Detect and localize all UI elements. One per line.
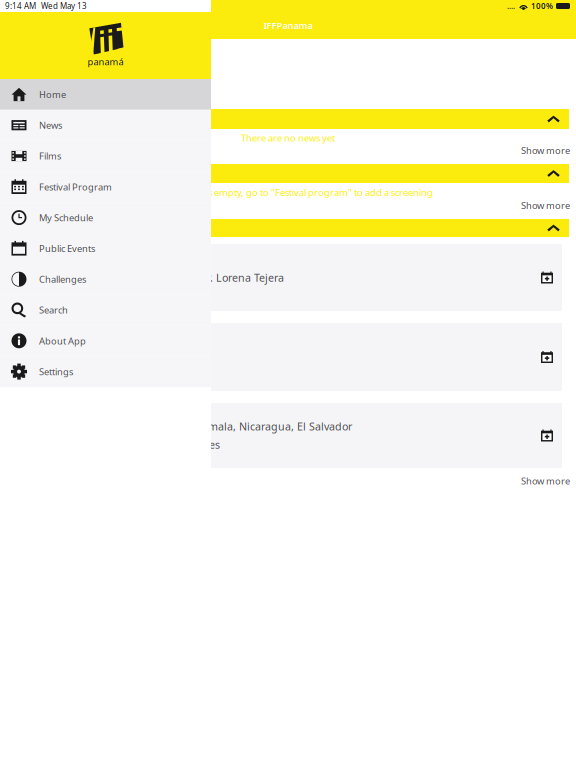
staticText: News [10,112,38,126]
staticText: .... [507,1,515,11]
staticText: Show more [521,144,570,157]
button[interactable]: My Schedule [0,202,211,233]
button[interactable]: Show more [0,202,576,219]
button[interactable]: Search [0,295,211,325]
button[interactable]: News [0,110,211,141]
button[interactable]: Challenges [0,264,211,295]
button[interactable]: My schedule [0,164,569,183]
button[interactable]: Home [0,79,211,110]
staticText: panamá [55,83,91,95]
staticText: Home [39,88,66,101]
staticText: My Schedule [39,211,93,224]
staticText: Dirección: Juan Carlos Borges [72,437,220,452]
button[interactable]: Show more [0,468,576,490]
staticText: Settings [39,365,73,378]
staticText: Panamá, 2024, 95 min | Dir. Lorena Tejer… [72,270,284,285]
staticText: Show more [521,475,570,487]
staticText: There are no news yet [241,132,335,144]
button[interactable]: Panamá, 2024, 95 min | Dir. Lorena Tejer… [0,244,562,311]
staticText: Search [39,304,68,316]
staticText: News [39,119,62,131]
staticText: 100% [531,1,553,11]
staticText: Films [39,150,61,162]
staticText: Panamá, Costa Rica, Guatemala, Nicaragua… [72,419,352,433]
staticText: IFFPanama [263,19,312,32]
button[interactable]: Panamá, Costa Rica, Guatemala, Nicaragua… [0,403,562,468]
button[interactable]: Festival Program [0,171,211,202]
button[interactable]: Settings [0,356,211,387]
staticText: Your schedule is empty, go to "Festival … [143,186,433,199]
button[interactable]: Films [0,141,211,171]
button[interactable]: Conversatorio [0,323,562,391]
staticText: Festival Program [39,181,112,193]
button[interactable]: News [0,109,569,129]
staticText: Public events [10,221,79,235]
staticText: About App [39,335,86,347]
staticText: Challenges [39,273,86,285]
button[interactable]: Public Events [0,233,211,264]
button[interactable]: Show more [0,147,576,164]
button[interactable]: About App [0,325,211,356]
staticText: Show more [521,199,570,212]
button[interactable]: Public events [0,219,569,237]
staticText: 9:14 AM [5,1,36,11]
staticText: My schedule [10,166,75,181]
staticText: Wed May 13 [41,1,87,11]
staticText: panamá [87,55,123,68]
staticText: Public Events [39,242,95,255]
